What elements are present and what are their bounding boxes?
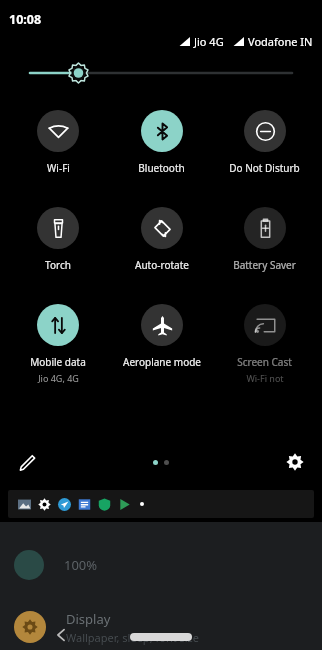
button[interactable]: Mobile data [6,302,110,386]
staticText: Aeroplane mode [123,355,201,369]
button[interactable]: Edit tiles [10,445,44,479]
button[interactable]: Brightness [30,60,292,86]
staticText: Vodafone IN [248,34,313,49]
staticText: 10:08 [9,11,42,28]
button[interactable]: Bluetooth [110,108,213,177]
staticText: Do Not Disturb [229,161,300,175]
staticText: Torch [45,258,71,272]
staticText: Bluetooth [138,161,185,175]
staticText: 100% [64,556,98,574]
button[interactable]: Torch [6,205,110,274]
staticText: Wi-Fi not [246,372,284,384]
button[interactable]: Settings [278,445,312,479]
staticText: Screen Cast [237,355,292,369]
button[interactable]: Battery Saver [213,205,316,274]
staticText: Wallpaper, sleep, font size [66,630,199,645]
staticText: Mobile data [30,355,86,369]
button[interactable]: Do Not Disturb [213,108,316,177]
button[interactable]: Wi-Fi [6,108,110,177]
staticText: Display [66,610,111,628]
button[interactable]: Screen Cast [213,302,316,386]
button[interactable] [8,490,314,518]
button[interactable]: Auto-rotate [110,205,213,274]
staticText: Wi-Fi [47,161,70,175]
staticText: Auto-rotate [135,258,189,272]
staticText: Jio 4G [194,34,224,49]
button[interactable]: Aeroplane mode [110,302,213,371]
staticText: Jio 4G, 4G [38,372,79,384]
staticText: Battery Saver [233,258,296,272]
